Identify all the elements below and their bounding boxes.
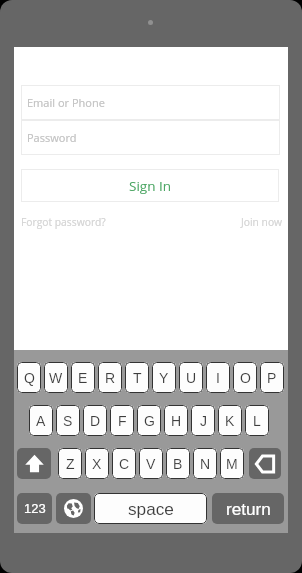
staticText: I	[216, 370, 220, 386]
staticText: C	[119, 456, 130, 472]
button[interactable]: F	[110, 405, 134, 436]
button[interactable]: T	[125, 362, 149, 393]
button[interactable]: K	[218, 405, 242, 436]
button[interactable]: X	[85, 448, 109, 479]
button[interactable]: Backspace	[249, 448, 281, 479]
staticText: Sign In	[129, 177, 172, 195]
staticText: X	[92, 456, 102, 472]
button[interactable]: C	[112, 448, 136, 479]
button[interactable]: E	[71, 362, 95, 393]
button[interactable]: V	[139, 448, 163, 479]
staticText: A	[36, 413, 46, 429]
staticText: U	[186, 370, 197, 386]
button[interactable]: Forgot password?	[21, 215, 106, 229]
staticText: N	[200, 456, 211, 472]
button[interactable]: N	[193, 448, 217, 479]
button[interactable]: L	[245, 405, 269, 436]
button[interactable]: Sign In	[21, 169, 279, 202]
button[interactable]: Password	[21, 120, 280, 155]
staticText: Y	[159, 370, 169, 386]
button[interactable]: return	[212, 493, 284, 524]
staticText: G	[144, 413, 155, 429]
button[interactable]: Z	[58, 448, 82, 479]
button[interactable]: Q	[17, 362, 41, 393]
staticText: Password	[27, 130, 77, 145]
button[interactable]: Join now	[241, 215, 282, 229]
staticText: P	[267, 370, 277, 386]
staticText: R	[105, 370, 116, 386]
staticText: D	[90, 413, 101, 429]
staticText: space	[128, 499, 174, 518]
button[interactable]: space	[94, 493, 207, 524]
staticText: K	[225, 413, 235, 429]
staticText: M	[226, 456, 238, 472]
staticText: B	[173, 456, 183, 472]
staticText: H	[171, 413, 182, 429]
staticText: Z	[66, 456, 75, 472]
button[interactable]: I	[206, 362, 230, 393]
button[interactable]: W	[44, 362, 68, 393]
button[interactable]: Y	[152, 362, 176, 393]
button[interactable]: S	[56, 405, 80, 436]
button[interactable]: U	[179, 362, 203, 393]
staticText: O	[240, 370, 251, 386]
staticText: return	[226, 499, 271, 518]
staticText: W	[49, 370, 63, 386]
button[interactable]: O	[233, 362, 257, 393]
button[interactable]: Shift	[17, 448, 51, 479]
staticText: T	[133, 370, 142, 386]
staticText: L	[253, 413, 261, 429]
button[interactable]: J	[191, 405, 215, 436]
button[interactable]: R	[98, 362, 122, 393]
staticText: 123	[24, 501, 46, 516]
staticText: Email or Phone	[27, 95, 105, 110]
button[interactable]: Email or Phone	[21, 85, 280, 120]
staticText: J	[200, 413, 207, 429]
button[interactable]: A	[29, 405, 53, 436]
button[interactable]: M	[220, 448, 244, 479]
button[interactable]: P	[260, 362, 284, 393]
staticText: Q	[24, 370, 35, 386]
staticText: V	[146, 456, 156, 472]
button[interactable]: Change keyboard language	[56, 493, 91, 524]
button[interactable]: B	[166, 448, 190, 479]
button[interactable]: 123	[17, 493, 52, 524]
staticText: S	[63, 413, 73, 429]
button[interactable]: H	[164, 405, 188, 436]
button[interactable]: G	[137, 405, 161, 436]
staticText: F	[118, 413, 127, 429]
staticText: E	[78, 370, 88, 386]
button[interactable]: D	[83, 405, 107, 436]
